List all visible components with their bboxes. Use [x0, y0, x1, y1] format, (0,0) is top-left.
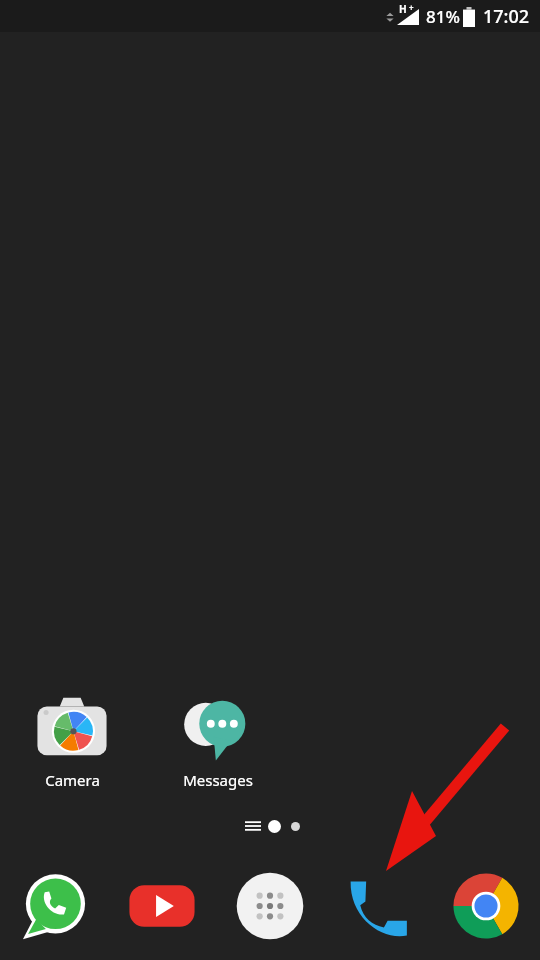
- staticText: 17:02: [483, 4, 530, 29]
- button[interactable]: YouTube: [108, 852, 216, 960]
- staticText: 81%: [426, 5, 460, 28]
- button[interactable]: Chrome: [432, 852, 540, 960]
- staticText: H: [399, 2, 407, 16]
- staticText: Messages: [183, 770, 253, 790]
- button[interactable]: All apps: [216, 852, 324, 960]
- button[interactable]: WhatsApp: [0, 852, 108, 960]
- button[interactable]: Phone: [324, 852, 432, 960]
- staticText: Camera: [45, 770, 100, 790]
- button[interactable]: Camera: [13, 688, 131, 794]
- button[interactable]: All pages: [241, 816, 265, 836]
- staticText: +: [409, 2, 414, 13]
- button[interactable]: Messages: [159, 688, 277, 794]
